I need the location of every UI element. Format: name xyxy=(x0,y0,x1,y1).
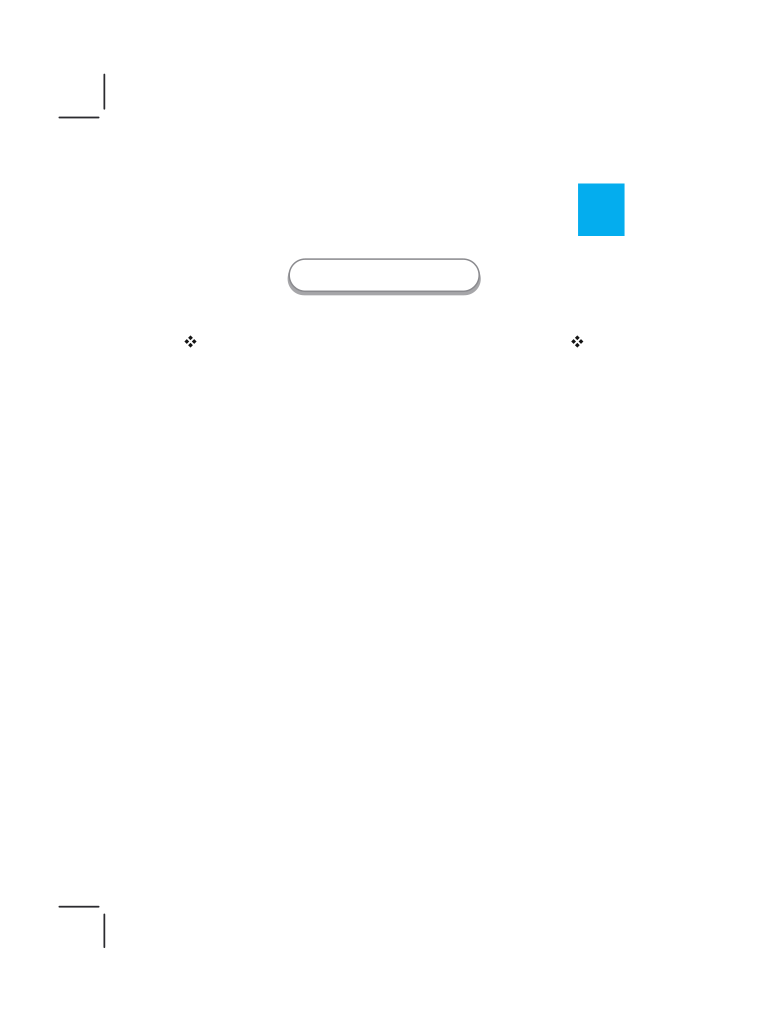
button[interactable]: Next xyxy=(570,334,584,348)
button[interactable]: Previous xyxy=(183,334,197,348)
button[interactable]: Continue xyxy=(286,255,482,295)
